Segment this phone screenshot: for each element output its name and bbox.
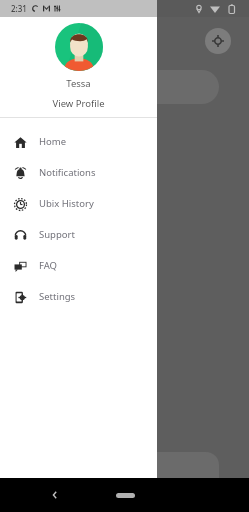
button[interactable]: Back	[43, 483, 67, 507]
staticText: Tessa	[66, 77, 91, 90]
button[interactable]: Home	[116, 493, 135, 498]
staticText: Notifications	[39, 166, 96, 179]
staticText: Settings	[39, 290, 76, 303]
button[interactable]: Locate	[205, 28, 231, 54]
button[interactable]: FAQ	[0, 250, 157, 281]
button[interactable]: Home	[0, 126, 157, 157]
staticText: FAQ	[39, 259, 58, 272]
button[interactable]: Tessa	[0, 17, 157, 117]
button[interactable]: Ubix History	[0, 188, 157, 219]
button[interactable]: Support	[0, 219, 157, 250]
staticText: View Profile	[52, 97, 105, 110]
button[interactable]: Notifications	[0, 157, 157, 188]
button[interactable]: Settings	[0, 281, 157, 312]
staticText: 2:31	[11, 3, 27, 14]
staticText: Ubix History	[39, 197, 94, 210]
staticText: Home	[39, 135, 67, 148]
staticText: Support	[39, 228, 75, 241]
